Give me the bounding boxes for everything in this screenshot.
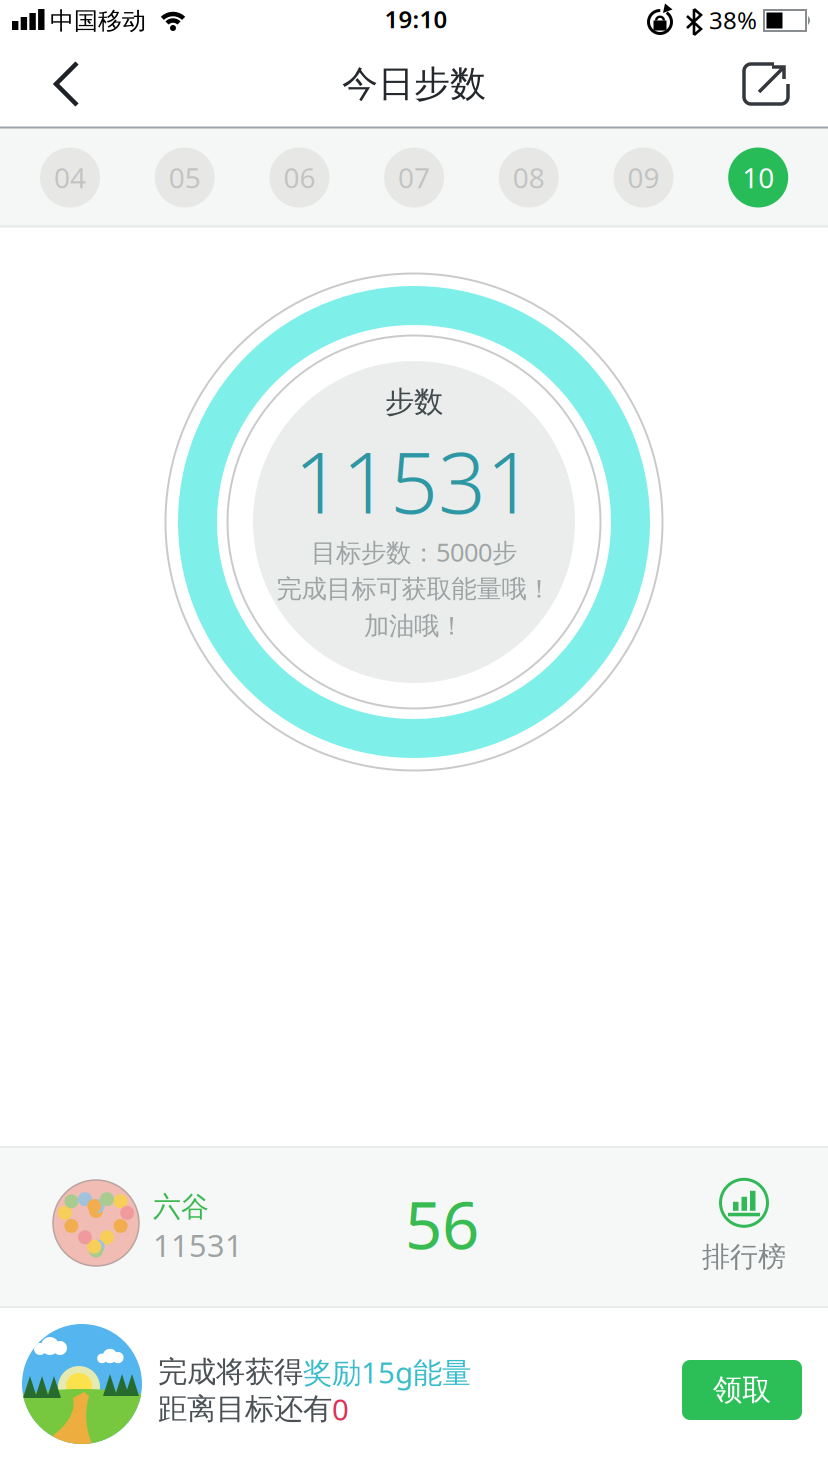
staticText: 目标步数：5000步 xyxy=(311,535,517,569)
staticText: 07 xyxy=(398,159,430,196)
staticText: 加油哦！ xyxy=(364,610,464,641)
button[interactable]: Back xyxy=(37,49,97,119)
button[interactable]: 领取 xyxy=(682,1360,802,1420)
staticText: 09 xyxy=(627,159,659,196)
staticText: 08 xyxy=(513,159,545,196)
staticText: 奖励15g能量 xyxy=(303,1352,471,1391)
button[interactable]: 07 xyxy=(384,147,444,207)
button[interactable]: 05 xyxy=(155,147,215,207)
button[interactable]: 10 xyxy=(728,147,788,207)
staticText: 10 xyxy=(742,159,774,196)
button[interactable]: Share xyxy=(738,56,794,112)
button[interactable]: 06 xyxy=(269,147,329,207)
staticText: 步数 xyxy=(385,384,443,420)
button[interactable]: 08 xyxy=(499,147,559,207)
staticText: 56 xyxy=(405,1181,479,1267)
button[interactable]: 排行榜 xyxy=(702,1178,786,1274)
staticText: 04 xyxy=(54,159,86,196)
staticText: 六谷 xyxy=(153,1190,209,1224)
staticText: 完成目标可获取能量哦！ xyxy=(276,573,551,604)
staticText: 中国移动 xyxy=(50,6,146,36)
staticText: 0 xyxy=(332,1389,349,1428)
staticText: 11531 xyxy=(294,425,534,537)
staticText: 排行榜 xyxy=(702,1240,786,1274)
button[interactable]: 04 xyxy=(40,147,100,207)
staticText: 06 xyxy=(283,159,315,196)
staticText: 05 xyxy=(169,159,201,196)
staticText: 距离目标还有 xyxy=(158,1391,332,1427)
staticText: 完成将获得 xyxy=(158,1354,303,1390)
button[interactable]: 09 xyxy=(613,147,673,207)
staticText: 19:10 xyxy=(384,3,447,35)
staticText: 今日步数 xyxy=(342,62,486,106)
staticText: 11531 xyxy=(153,1225,243,1265)
staticText: 38% xyxy=(709,4,757,36)
staticText: 领取 xyxy=(713,1372,771,1408)
